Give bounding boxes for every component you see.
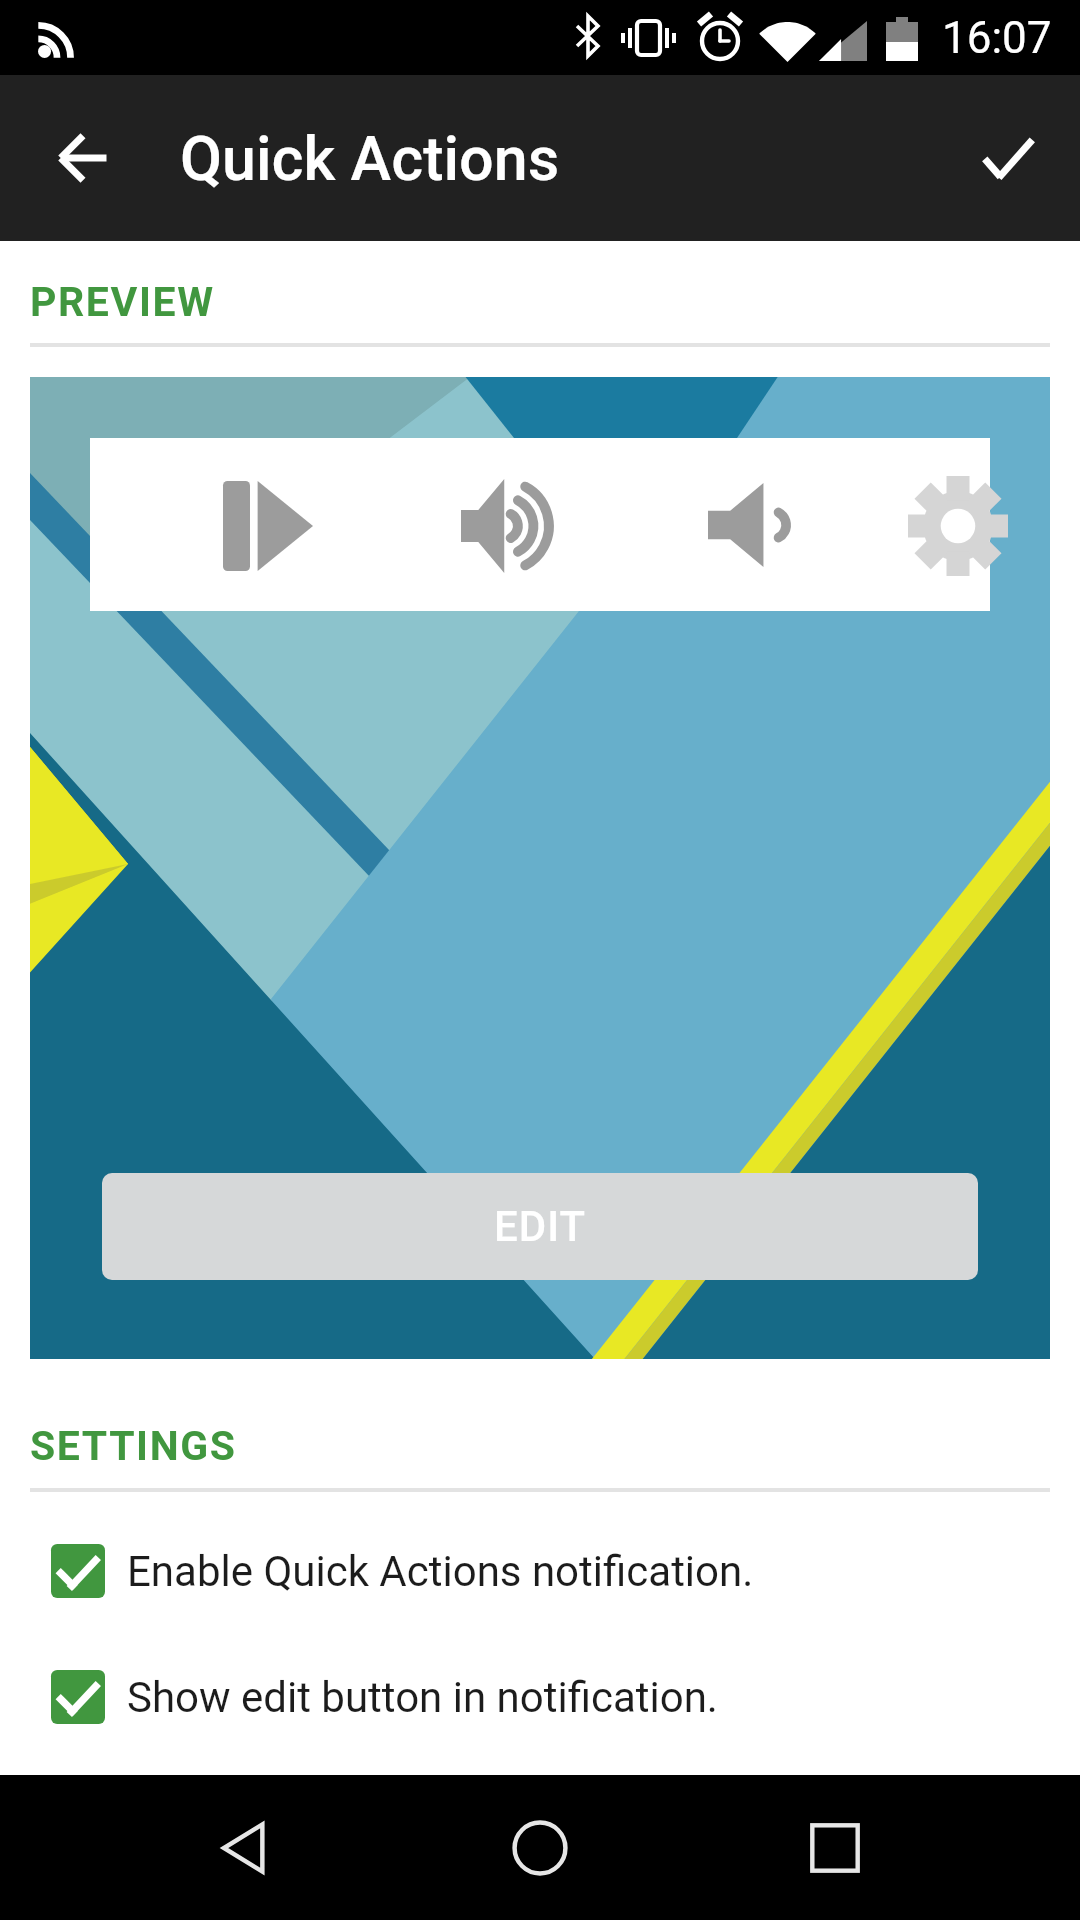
button[interactable]: Enable Quick Actions notification.: [0, 1512, 1080, 1630]
button[interactable]: Navigate up: [18, 93, 148, 223]
button[interactable]: [90, 438, 990, 611]
staticText: PREVIEW: [30, 278, 215, 326]
staticText: 16:07: [942, 12, 1052, 64]
staticText: EDIT: [494, 1202, 586, 1251]
staticText: Show edit button in notification.: [127, 1673, 718, 1722]
button[interactable]: Recent apps: [745, 1775, 925, 1920]
staticText: Enable Quick Actions notification.: [127, 1547, 754, 1596]
button[interactable]: EDIT: [102, 1173, 978, 1280]
button[interactable]: Show edit button in notification.: [0, 1638, 1080, 1756]
staticText: Quick Actions: [180, 123, 560, 194]
button[interactable]: Back: [155, 1775, 335, 1920]
staticText: SETTINGS: [30, 1422, 237, 1470]
button[interactable]: Home: [450, 1775, 630, 1920]
button[interactable]: Done: [943, 93, 1073, 223]
